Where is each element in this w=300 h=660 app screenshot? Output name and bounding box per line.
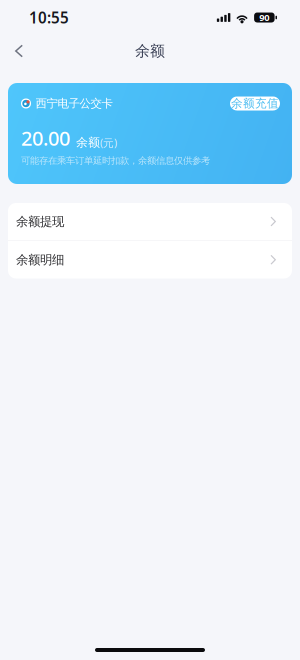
staticText: 余额 [76, 135, 100, 150]
staticText: 余额 [135, 42, 165, 60]
staticText: 可能存在乘车订单延时扣款，余额信息仅供参考 [21, 155, 210, 166]
staticText: 余额提现 [16, 214, 64, 229]
button[interactable]: Back [0, 35, 38, 67]
button[interactable]: 余额提现 [8, 203, 292, 240]
staticText: (元) [100, 136, 117, 150]
button[interactable]: 余额明细 [8, 241, 292, 278]
staticText: 20.00 [21, 125, 70, 151]
staticText: 余额明细 [16, 252, 64, 267]
button[interactable]: 余额充值 [230, 96, 280, 110]
staticText: 西宁电子公交卡 [35, 96, 112, 111]
staticText: 余额充值 [231, 96, 279, 111]
staticText: 90 [259, 11, 269, 24]
staticText: 10:55 [29, 7, 69, 28]
